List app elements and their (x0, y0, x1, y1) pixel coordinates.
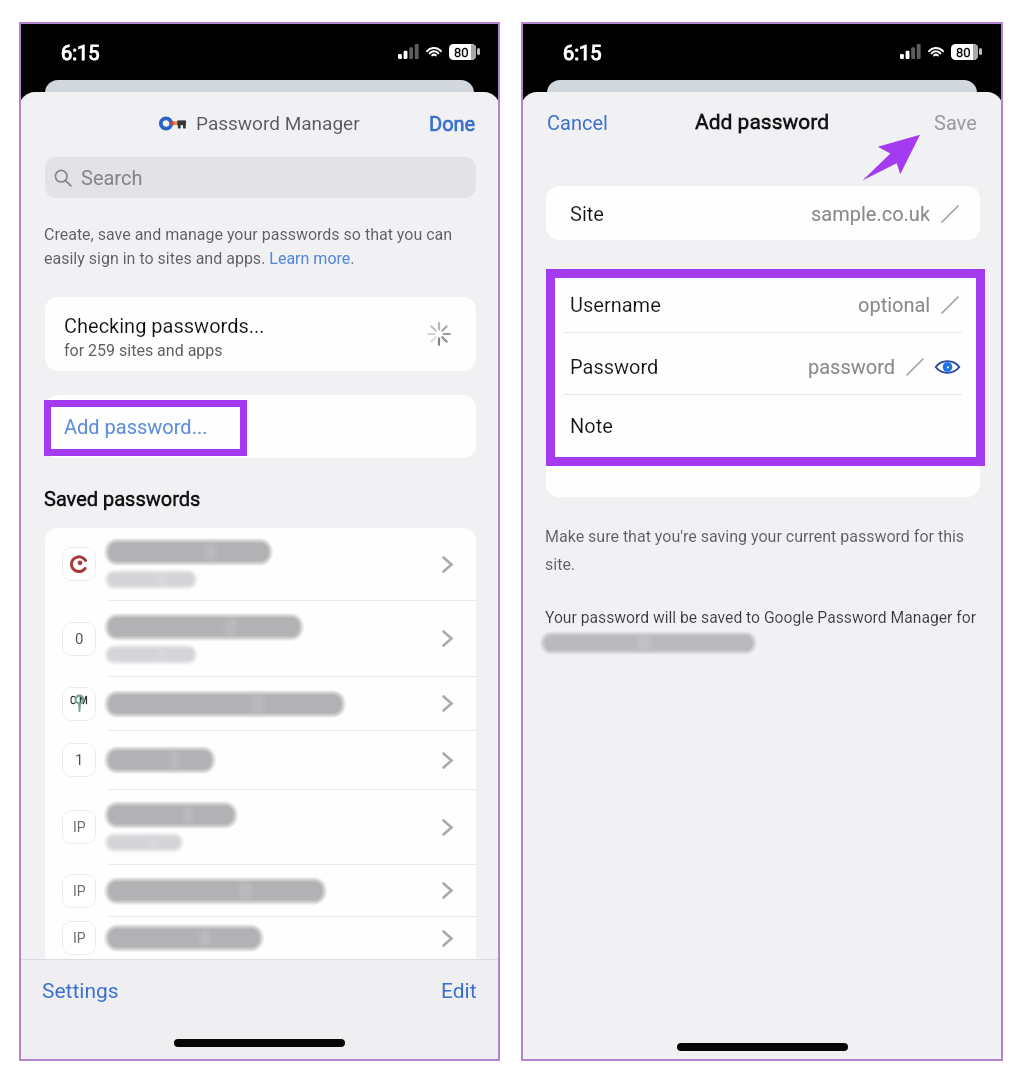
button[interactable]: Save (930, 103, 981, 142)
staticText: IP (73, 930, 86, 946)
staticText: Save (934, 111, 977, 134)
staticText: 80 (956, 45, 971, 60)
staticText: Edit (441, 979, 477, 1004)
staticText: 0 (75, 630, 84, 648)
button[interactable]: IP (45, 865, 476, 916)
staticText: Add password (695, 110, 830, 135)
staticText: Done (429, 112, 476, 135)
staticText: sample.co.uk (811, 202, 931, 225)
button[interactable]: Cancel (543, 103, 612, 142)
staticText: 80 (454, 45, 469, 60)
button[interactable]: 1 (45, 731, 476, 789)
staticText: for 259 sites and apps (64, 341, 223, 360)
button[interactable]: IP (45, 917, 476, 959)
staticText: 1 (75, 751, 84, 769)
button[interactable]: Edit (427, 971, 500, 1012)
button[interactable]: Password (546, 344, 980, 388)
button[interactable]: Search (45, 157, 476, 198)
staticText: Make sure that you're saving your curren… (545, 527, 970, 574)
staticText: Saved passwords (44, 487, 201, 510)
staticText: IP (73, 819, 86, 835)
button[interactable]: Username (546, 282, 980, 326)
staticText: Create, save and manage your passwords s… (44, 225, 462, 268)
staticText: 6:15 (563, 41, 602, 64)
staticText: Cancel (547, 111, 608, 134)
staticText: C M (70, 695, 88, 707)
button[interactable]: 0 (45, 601, 476, 676)
button[interactable] (45, 528, 476, 600)
button[interactable]: Site (546, 186, 980, 240)
staticText: password (808, 355, 896, 378)
button[interactable]: Add password... (45, 395, 476, 458)
button[interactable]: Checking passwords... (45, 297, 476, 371)
staticText: Checking passwords... (64, 314, 265, 337)
staticText: 6:15 (61, 41, 100, 64)
staticText: Search (81, 166, 143, 189)
staticText: Site (570, 202, 604, 225)
button[interactable]: Settings (19, 971, 133, 1012)
staticText: Add password... (64, 415, 208, 438)
staticText: Password Manager (196, 112, 360, 134)
staticText: Password (570, 355, 659, 378)
button[interactable]: IP (45, 790, 476, 864)
staticText: Note (570, 414, 613, 437)
staticText: optional (858, 293, 931, 316)
button[interactable]: C M (45, 677, 476, 730)
button[interactable]: Note (546, 403, 980, 447)
button[interactable]: Done (425, 104, 480, 143)
other: Show password (935, 359, 960, 375)
staticText: Settings (42, 979, 119, 1004)
staticText: IP (73, 883, 86, 899)
staticText: Your password will be saved to Google Pa… (545, 608, 993, 626)
staticText: Username (570, 293, 661, 316)
